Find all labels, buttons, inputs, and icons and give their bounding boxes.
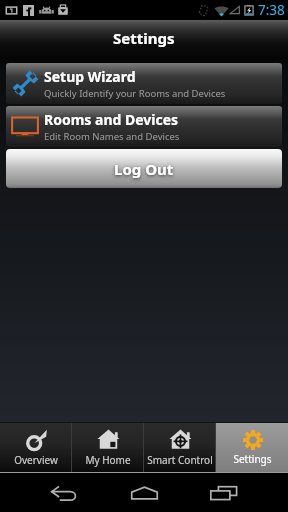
button[interactable]: Setup Wizard <box>6 63 282 104</box>
staticText: Edit Room Names and Devices <box>44 130 180 143</box>
button[interactable]: Back <box>44 473 84 512</box>
staticText: Settings <box>233 452 272 466</box>
staticText: Settings <box>113 28 175 48</box>
button[interactable]: Recent apps <box>204 473 244 512</box>
staticText: Rooms and Devices <box>44 110 179 129</box>
staticText: 7:38 <box>258 1 285 19</box>
button[interactable]: Settings <box>216 423 288 472</box>
staticText: Setup Wizard <box>44 67 136 86</box>
button[interactable]: My Home <box>72 423 144 472</box>
button[interactable]: Home <box>124 473 164 512</box>
staticText: Overview <box>14 453 58 467</box>
staticText: Log Out <box>114 159 174 179</box>
button[interactable]: Smart Control <box>144 423 216 472</box>
staticText: Smart Control <box>147 453 213 467</box>
staticText: Quickly Identify your Rooms and Devices <box>44 87 226 100</box>
button[interactable]: Log Out <box>6 149 282 188</box>
button[interactable]: Rooms and Devices <box>6 106 282 147</box>
staticText: My Home <box>85 453 131 467</box>
button[interactable]: Overview <box>0 423 72 472</box>
